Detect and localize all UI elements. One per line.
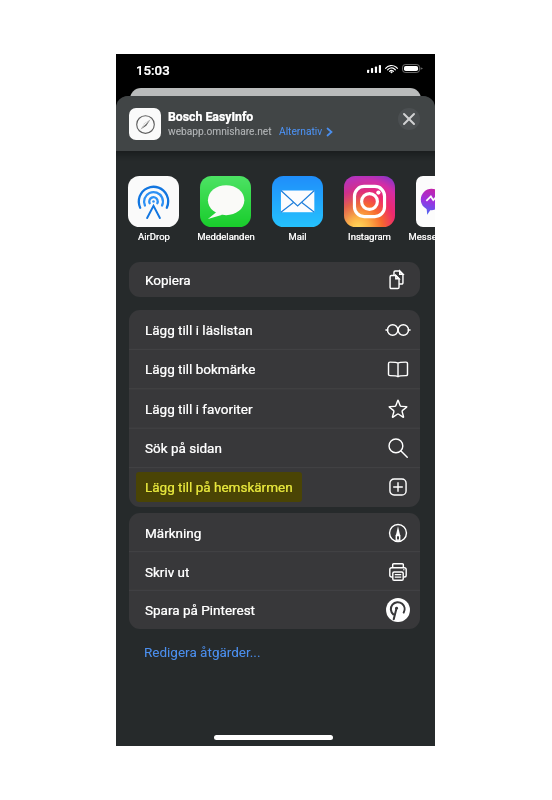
staticText: AirDrop: [138, 231, 170, 242]
button[interactable]: Märkning: [129, 513, 420, 552]
staticText: Bosch EasyInfo: [168, 110, 254, 124]
staticText: Messenger: [408, 231, 435, 242]
staticText: Sök på sidan: [145, 440, 222, 456]
button[interactable]: Lägg till i läslistan: [129, 310, 420, 349]
button[interactable]: AirDrop: [128, 176, 179, 246]
button[interactable]: Kopiera: [129, 262, 420, 297]
staticText: Meddelanden: [197, 231, 255, 242]
staticText: Skriv ut: [145, 564, 190, 580]
staticText: Lägg till i läslistan: [145, 322, 253, 338]
staticText: Mail: [288, 231, 307, 242]
button[interactable]: Lägg till på hemskärmen: [129, 467, 420, 506]
staticText: Märkning: [145, 525, 202, 541]
button[interactable]: Lägg till bokmärke: [129, 349, 420, 388]
staticText: Instagram: [348, 231, 391, 242]
staticText: Kopiera: [145, 272, 191, 288]
staticText: Lägg till bokmärke: [145, 361, 256, 377]
staticText: Lägg till i favoriter: [145, 401, 253, 417]
staticText: Alternativ: [279, 126, 323, 138]
button[interactable]: Meddelanden: [200, 176, 251, 246]
button[interactable]: Sök på sidan: [129, 428, 420, 467]
button[interactable]: Skriv ut: [129, 552, 420, 591]
staticText: Spara på Pinterest: [145, 602, 256, 618]
button[interactable]: Messenger: [416, 176, 435, 246]
button[interactable]: Spara på Pinterest: [129, 590, 420, 629]
button[interactable]: Mail: [272, 176, 323, 246]
button[interactable]: Lägg till i favoriter: [129, 389, 420, 428]
button[interactable]: Stäng: [398, 108, 420, 130]
button[interactable]: Redigera åtgärder...: [129, 629, 420, 675]
staticText: webapp.omnishare.net: [168, 126, 272, 138]
button[interactable]: Instagram: [344, 176, 395, 246]
staticText: 15:03: [136, 63, 170, 79]
staticText: Lägg till på hemskärmen: [145, 479, 293, 495]
button[interactable]: Bosch EasyInfo: [116, 96, 435, 151]
staticText: Redigera åtgärder...: [144, 644, 261, 660]
